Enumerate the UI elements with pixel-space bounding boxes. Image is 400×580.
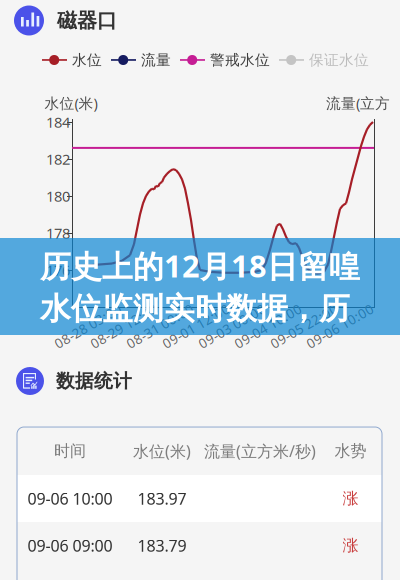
staticText: 09-06 10:00	[27, 488, 112, 509]
staticText: 历史上的12月18日留喤	[40, 245, 360, 286]
staticText: 保证水位	[309, 51, 369, 69]
staticText: 磁器口	[57, 8, 117, 33]
staticText: 水位(米)	[44, 93, 97, 113]
staticText: 流量	[141, 51, 171, 69]
staticText: 数据统计	[56, 369, 132, 392]
button[interactable]: 流量	[111, 51, 171, 69]
staticText: 08-29 12:00	[86, 317, 161, 335]
staticText: 涨	[342, 489, 358, 508]
staticText: 警戒水位	[210, 51, 270, 69]
staticText: 时间	[54, 441, 86, 461]
staticText: 176	[46, 260, 70, 280]
staticText: 183.97	[137, 488, 186, 509]
staticText: 09-06 10:00	[302, 317, 377, 335]
button[interactable]: 警戒水位	[180, 51, 270, 69]
staticText: 182	[46, 149, 70, 169]
button[interactable]: 保证水位	[279, 51, 369, 69]
staticText: 流量(立方	[326, 93, 390, 113]
staticText: 184	[46, 112, 70, 132]
staticText: 流量(立方米/秒)	[204, 440, 316, 462]
staticText: 180	[46, 186, 70, 206]
staticText: 水位(米)	[133, 440, 191, 462]
staticText: 08-28 03:00	[50, 317, 125, 335]
staticText: 09-05 22:00	[266, 317, 341, 335]
staticText: 08-31 00:00	[122, 317, 197, 335]
staticText: 水势	[334, 441, 366, 461]
staticText: 09-04 10:00	[230, 317, 305, 335]
staticText: 183.79	[137, 535, 186, 556]
button[interactable]: 09-06 09:00	[17, 522, 382, 569]
staticText: 09-03 00:00	[194, 317, 269, 335]
button[interactable]: 水位	[42, 51, 102, 69]
staticText: 09-01 12:00	[158, 317, 233, 335]
staticText: 涨	[342, 536, 358, 555]
button[interactable]: 09-06 10:00	[17, 475, 382, 522]
staticText: 水位监测实时数据，历	[40, 290, 350, 328]
staticText: 水位	[72, 51, 102, 69]
staticText: 178	[46, 223, 70, 243]
staticText: 09-06 09:00	[27, 535, 112, 556]
